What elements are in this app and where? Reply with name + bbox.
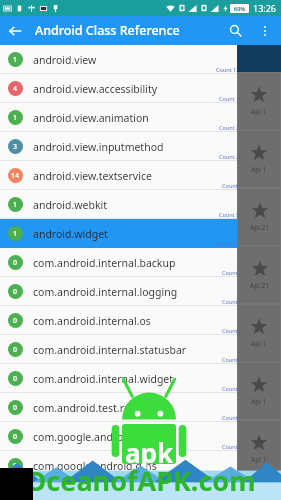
button[interactable]: 0 bbox=[0, 335, 281, 364]
button[interactable]: Favorite bbox=[238, 73, 280, 129]
staticText: apk bbox=[125, 435, 174, 470]
staticText: 13:26 bbox=[253, 2, 277, 14]
staticText: 0 bbox=[13, 461, 18, 471]
staticText: Api 1 bbox=[251, 107, 267, 116]
staticText: com.android.internal.logging bbox=[33, 285, 178, 299]
button[interactable]: Favorite bbox=[238, 305, 280, 361]
staticText: android.webkit bbox=[33, 198, 108, 212]
staticText: 1 bbox=[13, 113, 18, 123]
staticText: android.widget bbox=[33, 227, 108, 241]
staticText: 3 bbox=[13, 142, 18, 152]
button[interactable]: Favorite bbox=[238, 189, 280, 245]
button[interactable]: 0 bbox=[0, 451, 281, 480]
staticText: 0 bbox=[13, 432, 18, 442]
other: Favorite bbox=[250, 86, 268, 104]
staticText: Count 9 bbox=[222, 182, 243, 189]
button[interactable]: 0 bbox=[0, 248, 281, 277]
staticText: 4 bbox=[13, 84, 18, 94]
staticText: Count 1 bbox=[222, 472, 243, 479]
staticText: Api 1 bbox=[251, 165, 267, 174]
staticText: Count 1 bbox=[222, 298, 243, 305]
staticText: Count 177 bbox=[216, 240, 243, 247]
staticText: 0 bbox=[13, 345, 18, 355]
staticText: Api 21 bbox=[250, 281, 269, 290]
staticText: com.android.internal.widget bbox=[33, 372, 174, 386]
button[interactable]: Favorite bbox=[238, 421, 280, 477]
button[interactable]: Favorite bbox=[238, 131, 280, 187]
button[interactable]: 1 bbox=[0, 190, 281, 219]
other: Favorite bbox=[250, 318, 268, 336]
button[interactable]: 4 bbox=[0, 74, 281, 103]
staticText: com.android.test.runner bbox=[33, 401, 154, 415]
staticText: android.view.animation bbox=[33, 111, 149, 125]
button[interactable]: Favorite bbox=[238, 247, 280, 303]
button[interactable]: 0 bbox=[0, 393, 281, 422]
button[interactable]: 1 bbox=[0, 103, 281, 132]
staticText: 14 bbox=[11, 171, 20, 181]
button[interactable]: 0 bbox=[0, 306, 281, 335]
staticText: android.view bbox=[33, 53, 97, 67]
staticText: Api 21 bbox=[250, 223, 269, 232]
staticText: com.android.internal.backup bbox=[33, 256, 176, 270]
staticText: Count 20 bbox=[219, 153, 243, 160]
staticText: Count 1 bbox=[222, 385, 243, 392]
staticText: 1 bbox=[13, 229, 18, 239]
staticText: 0 bbox=[13, 374, 18, 384]
staticText: 1 bbox=[13, 55, 18, 65]
staticText: com.google.android.gms bbox=[33, 459, 157, 473]
button[interactable]: More options bbox=[250, 16, 279, 45]
staticText: Count 27 bbox=[219, 124, 243, 131]
staticText: Android Class Reference bbox=[35, 22, 180, 39]
staticText: 0 bbox=[13, 316, 18, 326]
staticText: Count 1 bbox=[222, 327, 243, 334]
staticText: android.view.textservice bbox=[33, 169, 152, 183]
button[interactable]: 1 bbox=[0, 45, 281, 74]
button[interactable]: Favorite bbox=[238, 363, 280, 419]
staticText: Count 1 bbox=[222, 269, 243, 276]
button[interactable]: Search bbox=[221, 16, 250, 45]
other: Favorite bbox=[251, 260, 269, 278]
button[interactable]: 3 bbox=[0, 132, 281, 161]
other: Favorite bbox=[250, 434, 268, 452]
staticText: 0 bbox=[13, 258, 18, 268]
button[interactable]: 0 bbox=[0, 364, 281, 393]
staticText: Count 51 bbox=[219, 211, 243, 218]
other: Favorite bbox=[250, 376, 268, 394]
staticText: Count 17 bbox=[219, 95, 243, 102]
staticText: android.view.inputmethod bbox=[33, 140, 164, 154]
staticText: Api 1 bbox=[251, 339, 267, 348]
button[interactable]: 14 bbox=[0, 161, 281, 190]
button[interactable]: Back bbox=[0, 16, 29, 45]
button[interactable]: 0 bbox=[0, 422, 281, 451]
staticText: Api 1 bbox=[251, 455, 267, 464]
staticText: 0 bbox=[13, 403, 18, 413]
staticText: com.google.android.gcm bbox=[33, 430, 157, 444]
staticText: Api 1 bbox=[251, 397, 267, 406]
staticText: 0 bbox=[13, 287, 18, 297]
staticText: OceanofAPK.com bbox=[25, 462, 256, 499]
button[interactable]: 1 bbox=[0, 219, 281, 248]
staticText: Count 1 bbox=[222, 356, 243, 363]
staticText: com.android.internal.os bbox=[33, 314, 151, 328]
staticText: com.android.internal.statusbar bbox=[33, 343, 187, 357]
other: Favorite bbox=[251, 202, 269, 220]
other: Favorite bbox=[250, 144, 268, 162]
button[interactable]: 0 bbox=[0, 277, 281, 306]
staticText: Count 5 bbox=[222, 443, 243, 450]
staticText: 60% bbox=[234, 5, 246, 12]
staticText: Count 2 bbox=[222, 414, 243, 421]
staticText: android.view.accessibility bbox=[33, 82, 158, 96]
staticText: 1 bbox=[13, 200, 18, 210]
staticText: Count 130 bbox=[216, 66, 243, 73]
